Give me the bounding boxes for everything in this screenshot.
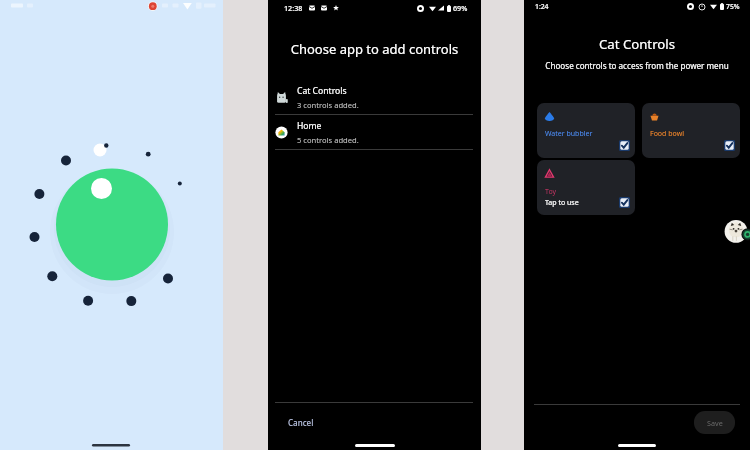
staticText: Food bowl bbox=[650, 129, 684, 139]
button[interactable]: Food bowl bbox=[642, 103, 740, 158]
button[interactable]: Home bbox=[268, 115, 481, 149]
staticText: Save bbox=[707, 418, 723, 428]
staticText: Choose app to add controls bbox=[268, 40, 481, 58]
staticText: 1:24 bbox=[535, 2, 549, 11]
staticText: Cat Controls bbox=[524, 35, 750, 53]
button[interactable]: Save bbox=[694, 411, 735, 434]
staticText: 5 controls added. bbox=[297, 135, 359, 145]
button[interactable]: Cancel bbox=[268, 409, 481, 435]
button[interactable]: Water bubbler bbox=[537, 103, 635, 158]
staticText: Water bubbler bbox=[545, 129, 593, 139]
button[interactable]: Toy bbox=[537, 160, 635, 215]
staticText: Choose controls to access from the power… bbox=[524, 60, 750, 71]
staticText: 3 controls added. bbox=[297, 100, 359, 110]
staticText: 12:38 bbox=[284, 3, 303, 13]
staticText: Home bbox=[297, 120, 322, 132]
staticText: Cat Controls bbox=[297, 85, 347, 97]
button[interactable]: Cat chat bubble bbox=[724, 219, 750, 245]
staticText: Cancel bbox=[288, 417, 314, 428]
button[interactable]: Cat Controls bbox=[268, 80, 481, 114]
staticText: 69% bbox=[453, 3, 468, 13]
staticText: 75% bbox=[726, 2, 740, 11]
staticText: Toy bbox=[545, 187, 557, 197]
staticText: Tap to use bbox=[545, 198, 579, 208]
